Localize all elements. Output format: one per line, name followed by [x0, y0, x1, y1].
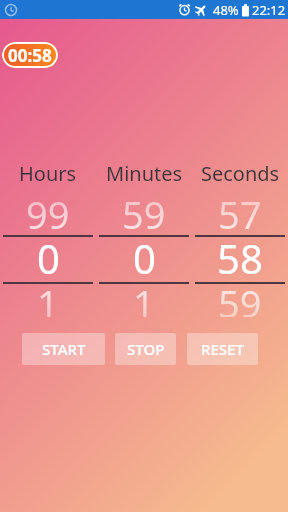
button[interactable]: 99 [0, 191, 96, 235]
button[interactable]: RESET [187, 333, 258, 365]
button[interactable]: STOP [115, 333, 176, 365]
staticText: STOP [127, 339, 165, 359]
staticText: 99 [26, 188, 70, 232]
button[interactable]: 00:58 [2, 42, 58, 68]
staticText: 59 [218, 277, 262, 317]
staticText: 1 [133, 277, 155, 317]
button[interactable]: 58 [192, 237, 288, 282]
button[interactable]: 1 [96, 284, 192, 324]
button[interactable]: 0 [0, 237, 96, 282]
staticText: 0 [37, 231, 60, 276]
button[interactable]: 59 [96, 191, 192, 235]
staticText: 22:12 [252, 1, 286, 19]
staticText: 48% [213, 1, 239, 19]
staticText: 57 [218, 188, 262, 232]
staticText: 58 [217, 231, 263, 276]
button[interactable]: START [22, 333, 105, 365]
staticText: Minutes [106, 160, 183, 184]
button[interactable]: 57 [192, 191, 288, 235]
staticText: 0 [133, 231, 156, 276]
button[interactable]: 59 [192, 284, 288, 324]
staticText: Seconds [201, 160, 280, 184]
staticText: 59 [122, 188, 166, 232]
button[interactable]: 0 [96, 237, 192, 282]
staticText: START [42, 339, 86, 359]
staticText: Hours [19, 160, 77, 184]
staticText: 1 [37, 277, 59, 317]
staticText: 00:58 [8, 44, 52, 67]
button[interactable]: 1 [0, 284, 96, 324]
staticText: RESET [201, 339, 244, 359]
